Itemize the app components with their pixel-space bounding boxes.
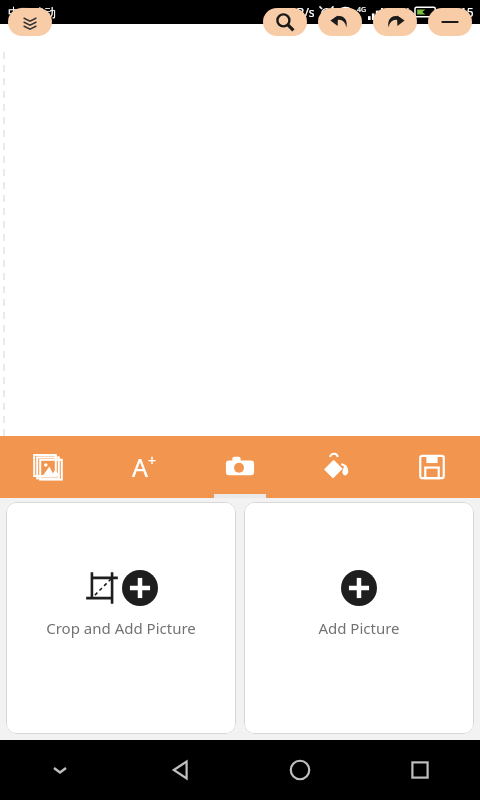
button[interactable]: Gallery: [0, 436, 96, 498]
button[interactable]: Redo: [373, 8, 417, 36]
button[interactable]: Hide keyboard: [0, 740, 120, 800]
button[interactable]: Minimize: [428, 8, 472, 36]
button[interactable]: Crop and Add Picture: [6, 502, 236, 734]
button[interactable]: Recents: [360, 740, 480, 800]
button[interactable]: Home: [240, 740, 360, 800]
staticText: Crop and Add Picture: [46, 618, 196, 638]
staticText: Add Picture: [318, 618, 400, 638]
staticText: 50%: [387, 4, 411, 20]
staticText: +: [148, 451, 157, 470]
button[interactable]: Fill color: [288, 436, 384, 498]
staticText: 4G: [357, 5, 367, 15]
staticText: 23:15: [443, 4, 474, 20]
button[interactable]: Save: [384, 436, 480, 498]
staticText: 180B/s: [276, 4, 315, 20]
staticText: A: [132, 450, 148, 484]
button[interactable]: Layers: [8, 8, 52, 36]
staticText: 中国移动: [8, 5, 56, 20]
button[interactable]: Camera: [192, 436, 288, 498]
button[interactable]: Add text: [96, 436, 192, 498]
button[interactable]: Back: [120, 740, 240, 800]
button[interactable]: Add Picture: [244, 502, 474, 734]
button[interactable]: Search: [263, 8, 307, 36]
button[interactable]: Undo: [318, 8, 362, 36]
